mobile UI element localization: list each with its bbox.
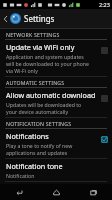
staticText: Notifications	[6, 131, 49, 141]
button[interactable]: Allow automatic download	[0, 88, 112, 117]
staticText: NOTIFICATION SETTINGS	[6, 120, 72, 127]
staticText: Play a tone to notify of new	[6, 142, 73, 149]
staticText: Notification tone	[6, 161, 63, 171]
staticText: NETWORK SETTINGS	[6, 31, 60, 38]
button[interactable]: Back	[0, 184, 38, 200]
button[interactable]: Notification tone	[0, 159, 112, 181]
button[interactable]: Home	[38, 184, 75, 200]
staticText: applications and updates	[6, 149, 68, 156]
staticText: Settings	[24, 13, 55, 24]
staticText: 2:23	[99, 1, 110, 8]
staticText: via Wi-Fi only	[6, 67, 38, 74]
staticText: Update via WiFi only	[6, 42, 75, 52]
staticText: will be downloaded to your phone	[6, 60, 89, 67]
button[interactable]: Up, Settings	[0, 9, 112, 28]
button[interactable]: Notifications	[0, 129, 112, 158]
button[interactable]: Recent apps	[75, 184, 112, 200]
staticText: AUTOMATIC SETTINGS	[6, 79, 65, 86]
button[interactable]: Update via WiFi only	[0, 40, 112, 76]
staticText: Application and system updates	[6, 53, 84, 60]
staticText: Allow automatic download	[6, 90, 96, 100]
staticText: your device automatically	[6, 108, 69, 115]
staticText: Notification	[6, 172, 35, 179]
staticText: Updates will be downloaded to	[6, 101, 82, 108]
